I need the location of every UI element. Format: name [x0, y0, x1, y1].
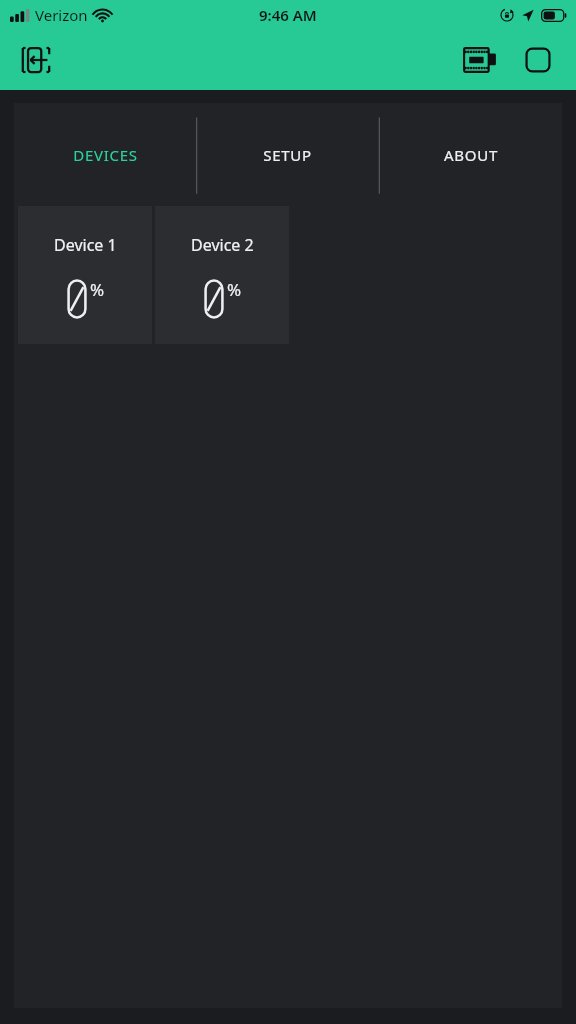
staticText: % — [227, 278, 242, 301]
staticText: SETUP — [263, 145, 312, 165]
button[interactable]: DEVICES — [14, 103, 196, 206]
button[interactable]: Device 1 — [18, 206, 152, 344]
staticText: ABOUT — [444, 145, 498, 165]
staticText: DEVICES — [73, 145, 138, 165]
staticText: Device 1 — [54, 234, 117, 256]
button[interactable]: Exit — [12, 36, 60, 84]
button[interactable]: Stop — [514, 36, 562, 84]
staticText: 9:46 AM — [259, 5, 317, 25]
button[interactable]: ABOUT — [379, 103, 562, 206]
staticText: Verizon — [35, 5, 88, 25]
button[interactable]: SETUP — [196, 103, 379, 206]
staticText: % — [90, 278, 105, 301]
staticText: Device 2 — [191, 234, 254, 256]
button[interactable]: Device chip — [456, 36, 504, 84]
button[interactable]: Device 2 — [155, 206, 289, 344]
